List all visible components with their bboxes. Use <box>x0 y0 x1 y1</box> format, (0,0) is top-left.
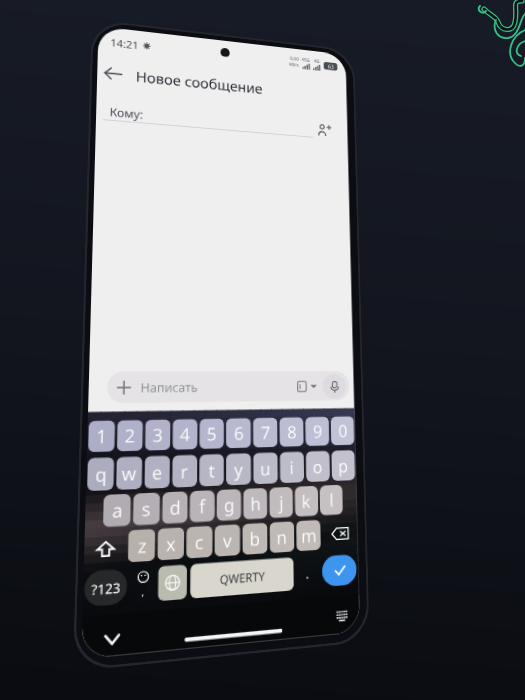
button[interactable]: j <box>269 487 293 518</box>
staticText: QWERTY <box>220 568 266 587</box>
button[interactable]: g <box>217 489 241 521</box>
staticText: 4 <box>180 422 190 447</box>
staticText: z <box>138 533 147 559</box>
button[interactable]: c <box>186 526 213 559</box>
button[interactable]: QWERTY <box>190 557 294 599</box>
button[interactable]: n <box>269 521 294 553</box>
staticText: 0,00 <box>290 55 299 62</box>
staticText: x <box>166 531 176 557</box>
staticText: Кому: <box>109 104 143 122</box>
button[interactable]: w <box>116 456 143 490</box>
button[interactable]: d <box>162 491 188 524</box>
button[interactable]: l <box>320 485 343 515</box>
staticText: w <box>121 461 137 486</box>
button[interactable]: Backspace <box>322 518 357 550</box>
staticText: o <box>312 455 323 479</box>
staticText: 1 <box>96 424 107 449</box>
staticText: 63 <box>328 63 334 71</box>
button[interactable]: 5 <box>199 418 224 449</box>
staticText: j <box>279 490 284 514</box>
button[interactable]: Back <box>97 54 132 93</box>
button[interactable]: t <box>199 454 224 486</box>
button[interactable]: Shift <box>85 530 126 566</box>
button[interactable]: 8 <box>279 417 304 447</box>
staticText: 5 <box>207 422 217 446</box>
staticText: r <box>180 459 189 484</box>
button[interactable]: Add contact <box>313 118 335 141</box>
button[interactable]: 4 <box>172 419 198 450</box>
button[interactable]: 7 <box>253 417 278 448</box>
staticText: Новое сообщение <box>136 67 263 97</box>
staticText: 3 <box>152 423 163 447</box>
staticText: k <box>301 489 311 513</box>
staticText: 8 <box>287 420 297 444</box>
staticText: i <box>289 456 294 480</box>
button[interactable]: y <box>226 453 251 485</box>
staticText: 2 <box>124 423 136 448</box>
button[interactable]: 3 <box>145 419 171 451</box>
staticText: 9 <box>313 420 323 443</box>
button[interactable]: z <box>128 529 155 563</box>
button[interactable]: v <box>214 524 240 557</box>
button[interactable]: o <box>306 451 330 482</box>
button[interactable]: p <box>331 450 355 481</box>
staticText: 7 <box>261 421 271 444</box>
button[interactable]: Voice message <box>322 374 346 399</box>
button[interactable]: Send <box>322 554 357 587</box>
staticText: Написать <box>140 378 198 395</box>
staticText: p <box>338 454 349 478</box>
button[interactable]: u <box>253 452 278 484</box>
button[interactable]: b <box>242 523 268 555</box>
staticText: , <box>141 583 145 599</box>
staticText: m <box>301 523 317 548</box>
button[interactable]: 6 <box>226 418 251 448</box>
button[interactable]: s <box>133 492 160 526</box>
button[interactable]: h <box>243 488 267 520</box>
button[interactable]: f <box>190 490 215 523</box>
button[interactable]: Hide keyboard <box>100 627 123 652</box>
button[interactable]: a <box>103 494 131 527</box>
staticText: 4G <box>314 58 320 65</box>
staticText: g <box>224 492 235 517</box>
staticText: s <box>141 496 152 522</box>
staticText: 6 <box>234 421 244 445</box>
staticText: h <box>250 491 261 516</box>
button[interactable]: i <box>280 451 304 483</box>
button[interactable]: k <box>295 486 318 517</box>
button[interactable]: Написать <box>107 371 350 403</box>
staticText: . <box>305 563 310 583</box>
staticText: KB/s <box>289 61 299 69</box>
staticText: q <box>95 462 108 487</box>
staticText: 0 <box>338 419 348 442</box>
button[interactable]: 0 <box>331 416 354 445</box>
button[interactable]: q <box>87 457 114 491</box>
staticText: n <box>276 525 287 550</box>
staticText: u <box>260 456 271 481</box>
button[interactable]: Period <box>296 555 318 590</box>
button[interactable]: ?123 <box>84 568 127 607</box>
button[interactable]: r <box>172 455 197 488</box>
staticText: f <box>199 494 205 519</box>
staticText: b <box>249 526 261 551</box>
staticText: a <box>112 497 123 523</box>
staticText: t <box>209 458 216 483</box>
staticText: e <box>152 460 163 485</box>
button[interactable]: x <box>157 527 184 561</box>
staticText: d <box>169 495 181 520</box>
button[interactable]: Emoji <box>130 567 155 603</box>
button[interactable]: 1 <box>88 420 115 452</box>
staticText: 45G <box>301 57 310 64</box>
button[interactable]: 9 <box>305 416 329 446</box>
staticText: v <box>223 528 232 553</box>
staticText: ?123 <box>91 578 121 598</box>
staticText: l <box>329 488 334 512</box>
button[interactable]: m <box>296 520 321 552</box>
button[interactable]: 2 <box>117 420 143 452</box>
button[interactable]: Switch keyboard <box>334 606 350 625</box>
button[interactable]: Change language <box>158 564 187 601</box>
staticText: 14:21 <box>110 35 140 52</box>
button[interactable]: e <box>144 455 170 489</box>
staticText: c <box>195 529 204 555</box>
staticText: y <box>234 457 243 482</box>
